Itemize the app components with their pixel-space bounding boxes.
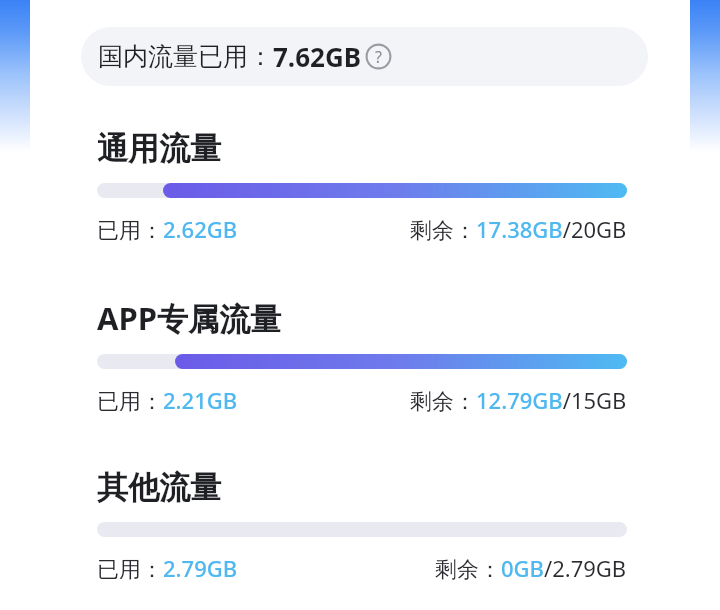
staticText: 已用：2.62GB — [97, 214, 238, 244]
staticText: 国内流量已用： — [98, 41, 273, 72]
staticText: ? — [375, 46, 382, 68]
button[interactable]: 国内流量已用： — [81, 27, 648, 86]
staticText: 已用：2.79GB — [97, 553, 238, 583]
button[interactable]: 帮助说明 — [365, 43, 392, 70]
button[interactable]: APP专属流量 — [0, 297, 720, 415]
staticText: 已用：2.21GB — [97, 385, 238, 415]
staticText: 通用流量 — [97, 129, 221, 168]
staticText: APP专属流量 — [97, 297, 281, 339]
staticText: 剩余：17.38GB/20GB — [410, 214, 627, 244]
button[interactable]: 通用流量 — [0, 129, 720, 244]
staticText: 7.62GB — [273, 39, 362, 74]
staticText: 其他流量 — [97, 468, 221, 507]
staticText: 剩余：0GB/2.79GB — [435, 553, 627, 583]
button[interactable]: 其他流量 — [0, 468, 720, 583]
staticText: 剩余：12.79GB/15GB — [410, 385, 627, 415]
